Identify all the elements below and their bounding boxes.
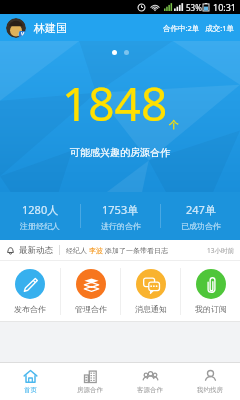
- staticText: 我约找房: [197, 386, 223, 394]
- button[interactable]: Profile avatar: [6, 18, 26, 38]
- staticText: 1280人: [22, 202, 59, 217]
- staticText: 53%: [186, 2, 202, 13]
- staticText: 林建国: [34, 21, 67, 35]
- staticText: 可能感兴趣的房源合作: [70, 146, 170, 159]
- staticText: 1753单: [102, 202, 139, 217]
- button[interactable]: 我的订阅: [181, 261, 240, 322]
- staticText: 1848: [62, 72, 168, 135]
- button[interactable]: 最新动态: [0, 240, 240, 260]
- staticText: 最新动态: [19, 245, 53, 256]
- staticText: 注册经纪人: [20, 221, 60, 231]
- button[interactable]: 房源合作: [60, 363, 120, 400]
- button[interactable]: 1753单: [81, 192, 160, 240]
- staticText: 发布合作: [14, 304, 46, 314]
- staticText: 房源合作: [77, 386, 103, 394]
- button[interactable]: 管理合作: [61, 261, 120, 322]
- staticText: 合作中:2单 成交:1单: [163, 23, 234, 33]
- staticText: 个: [169, 118, 179, 131]
- staticText: 客源合作: [137, 386, 163, 394]
- button[interactable]: 我约找房: [180, 363, 240, 400]
- staticText: 消息通知: [135, 304, 167, 314]
- button[interactable]: 247单: [161, 192, 240, 240]
- staticText: 我的订阅: [195, 304, 227, 314]
- staticText: 管理合作: [75, 304, 107, 314]
- button[interactable]: 1280人: [0, 192, 80, 240]
- staticText: 进行的合作: [101, 221, 141, 231]
- button[interactable]: 发布合作: [0, 261, 60, 322]
- button[interactable]: 客源合作: [120, 363, 180, 400]
- staticText: 经纪人: [66, 246, 87, 255]
- staticText: 李波: [89, 246, 103, 255]
- staticText: 10:31: [213, 1, 237, 13]
- staticText: 已成功合作: [181, 221, 221, 231]
- staticText: V: [21, 31, 25, 38]
- staticText: 247单: [186, 202, 216, 217]
- staticText: 首页: [24, 386, 37, 394]
- staticText: 13小时前: [207, 246, 234, 255]
- button[interactable]: 首页: [0, 363, 60, 400]
- staticText: 添加了一条带看日志: [105, 246, 168, 255]
- button[interactable]: 消息通知: [121, 261, 180, 322]
